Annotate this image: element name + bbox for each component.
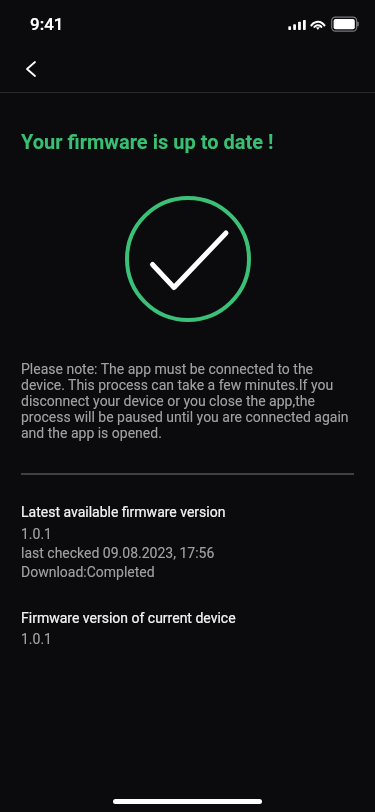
staticText: Latest available firmware version (21, 504, 226, 520)
staticText: Firmware version of current device (21, 610, 236, 626)
button[interactable]: Back (11, 49, 51, 89)
staticText: Please note: The app must be connected t… (21, 361, 355, 441)
staticText: 1.0.1 (21, 631, 52, 647)
staticText: 9:41 (30, 14, 64, 34)
staticText: Your firmware is up to date ! (21, 130, 274, 153)
staticText: 1.0.1 last checked 09.08.2023, 17:56 Dow… (21, 526, 215, 580)
